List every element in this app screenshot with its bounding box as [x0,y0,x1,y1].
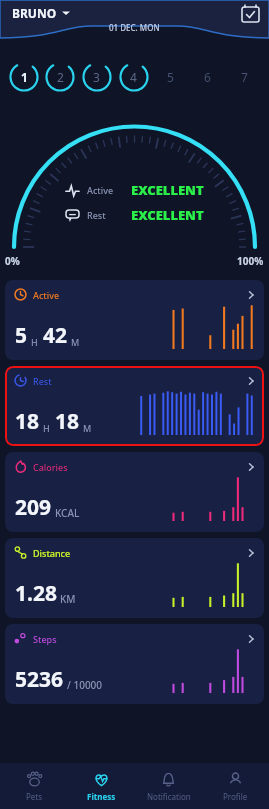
staticText: KCAL [55,506,80,520]
staticText: H [43,422,50,434]
button[interactable]: 3 [78,57,115,97]
staticText: 5 [167,69,174,85]
staticText: 6 [204,69,211,85]
button[interactable]: Calories [5,452,264,532]
staticText: 100% [237,254,264,268]
staticText: M [83,422,92,434]
button[interactable]: Active [5,280,264,360]
staticText: M [71,336,80,348]
button[interactable]: Rest [5,366,264,446]
staticText: EXCELLENT [131,181,204,199]
staticText: 18 [55,407,80,436]
staticText: Fitness [87,791,116,802]
button[interactable]: Pets [0,767,68,806]
staticText: 4 [130,69,137,85]
staticText: 1.28 [15,579,57,608]
staticText: 5236 [15,665,64,694]
staticText: 18 [15,407,40,436]
staticText: 01 DEC. MON [109,22,160,33]
button[interactable]: BRUNO [10,3,72,23]
button[interactable]: Profile [202,767,269,806]
staticText: Steps [33,633,57,645]
staticText: Profile [223,791,248,802]
staticText: / 10000 [67,678,103,692]
staticText: 7 [241,69,248,85]
button[interactable]: 2 [42,57,78,97]
staticText: Active [33,289,60,301]
button[interactable]: Notification [135,767,202,806]
staticText: 209 [15,493,52,522]
button[interactable]: 4 [115,57,152,97]
staticText: BRUNO [12,5,57,21]
button[interactable]: 7 [226,57,263,97]
button[interactable]: 6 [189,57,226,97]
staticText: 1 [21,69,28,85]
staticText: H [31,336,38,348]
button[interactable]: 5 [152,57,189,97]
staticText: Calories [33,461,68,473]
staticText: Pets [26,791,43,802]
staticText: Rest [33,375,52,387]
button[interactable]: 01 DEC. MON [109,22,160,33]
staticText: Rest [87,209,106,221]
staticText: Active [87,184,114,196]
staticText: Distance [33,547,71,559]
staticText: Notification [147,791,191,802]
staticText: EXCELLENT [131,206,204,224]
staticText: 0% [5,254,20,268]
button[interactable]: Steps [5,624,264,704]
staticText: 5 [15,321,28,350]
button[interactable]: Fitness [68,767,135,806]
staticText: 3 [93,69,100,85]
button[interactable]: Calendar [240,3,261,24]
button[interactable]: 1 [6,57,42,97]
staticText: KM [60,592,76,606]
staticText: 42 [43,321,68,350]
button[interactable]: Distance [5,538,264,618]
staticText: 2 [57,69,64,85]
